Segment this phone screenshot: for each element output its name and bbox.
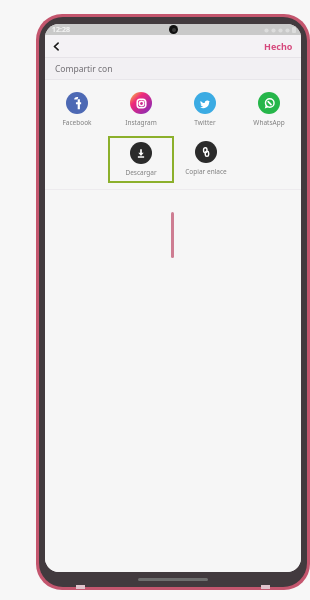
staticText: Facebook [62, 118, 92, 127]
staticText: Descargar [125, 168, 157, 177]
button[interactable]: WhatsApp [237, 87, 301, 132]
button[interactable]: Copiar enlace [174, 136, 238, 181]
staticText: WhatsApp [253, 118, 285, 127]
staticText: Compartir con [55, 63, 113, 75]
staticText: Twitter [194, 118, 216, 127]
button[interactable]: Back [45, 35, 67, 57]
staticText: Instagram [125, 118, 157, 127]
button[interactable]: Instagram [109, 87, 173, 132]
staticText: 12:28 [52, 25, 70, 35]
button[interactable]: Hecho [256, 36, 301, 56]
button[interactable]: Facebook [45, 87, 109, 132]
staticText: Copiar enlace [185, 167, 227, 176]
button[interactable]: Descargar [109, 137, 173, 182]
staticText: Hecho [264, 40, 293, 52]
button[interactable]: Twitter [173, 87, 237, 132]
